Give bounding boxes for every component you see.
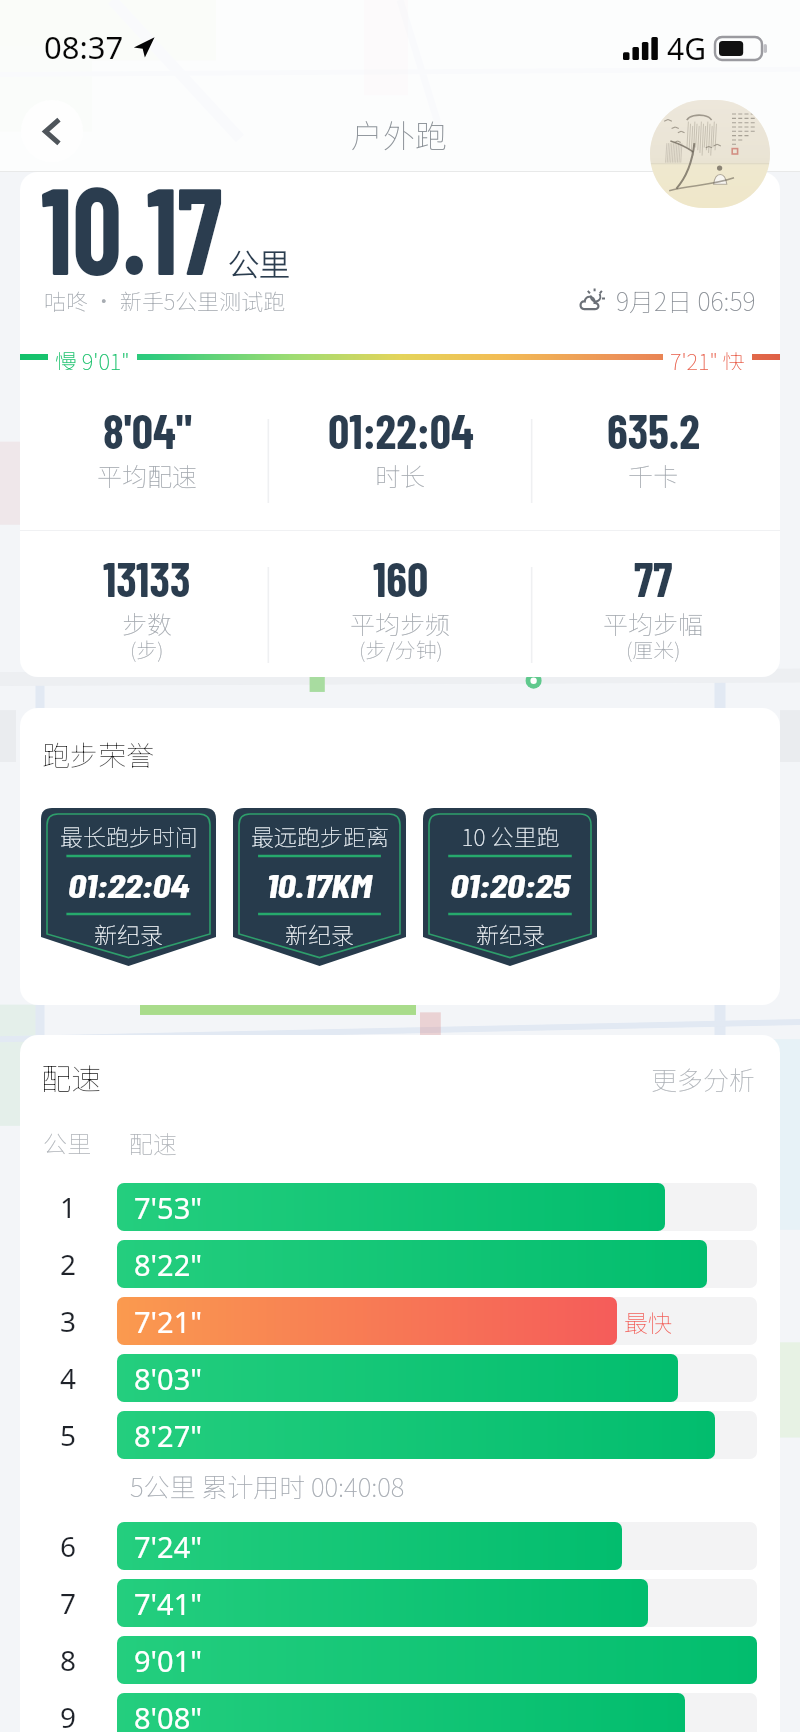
staticText: 新纪录 [94, 917, 163, 950]
staticText: 9 [60, 1698, 77, 1732]
button[interactable]: 13133 [20, 563, 274, 675]
staticText: 4 [60, 1359, 77, 1397]
staticText: 7'41" [134, 1584, 203, 1623]
staticText: 跑步荣誉 [42, 734, 155, 775]
button[interactable]: 01:22:04 [274, 415, 527, 515]
staticText: 160 [373, 550, 429, 606]
staticText: 平均步幅 [603, 605, 704, 641]
staticText: 户外跑 [351, 111, 448, 157]
staticText: 配速 [129, 1125, 177, 1160]
staticText: 01:22:04 [328, 402, 474, 458]
staticText: 635.2 [607, 402, 700, 458]
staticText: 7'21" [134, 1302, 203, 1341]
button[interactable]: 最远跑步距离 [233, 808, 406, 966]
staticText: 新纪录 [285, 917, 354, 950]
button[interactable]: User avatar [650, 100, 770, 208]
staticText: 公里 [228, 240, 290, 285]
staticText: (步) [130, 634, 164, 664]
staticText: 01:22:04 [68, 865, 190, 905]
button[interactable]: 635.2 [527, 415, 780, 515]
staticText: 咕咚 · 新手5公里测试跑 [44, 284, 286, 316]
staticText: 7'53" [134, 1188, 203, 1227]
staticText: 8'03" [134, 1359, 203, 1398]
button[interactable]: 7 [20, 1579, 780, 1627]
staticText: 新纪录 [476, 917, 545, 950]
staticText: 1 [60, 1188, 77, 1226]
staticText: 9'01" [134, 1641, 203, 1680]
staticText: 6 [60, 1527, 77, 1565]
staticText: 最长跑步时间 [60, 819, 198, 852]
staticText: 10.17 [41, 172, 223, 299]
button[interactable]: 10 公里跑 [423, 808, 597, 966]
staticText: 01:20:25 [450, 865, 570, 905]
button[interactable]: 2 [20, 1240, 780, 1288]
staticText: 步数 [122, 605, 173, 641]
button[interactable]: 1 [20, 1183, 780, 1231]
staticText: 时长 [375, 457, 426, 493]
staticText: 77 [634, 550, 673, 606]
staticText: 慢 9'01" [55, 344, 130, 370]
staticText: 最远跑步距离 [251, 819, 389, 852]
staticText: 8'04" [103, 402, 192, 458]
staticText: 9月2日 06:59 [616, 282, 756, 318]
staticText: 7'24" [134, 1527, 203, 1566]
staticText: 8'22" [134, 1245, 203, 1284]
staticText: 配速 [41, 1055, 101, 1098]
staticText: 更多分析 [651, 1060, 756, 1098]
staticText: 平均步频 [350, 605, 451, 641]
staticText: 8'27" [134, 1416, 203, 1455]
staticText: 7'21" 快 [670, 344, 745, 370]
staticText: 平均配速 [97, 457, 198, 493]
button[interactable]: 77 [527, 563, 780, 675]
staticText: 10 公里跑 [461, 819, 560, 852]
staticText: (厘米) [626, 634, 681, 664]
button[interactable]: 3 [20, 1297, 780, 1345]
staticText: 千卡 [628, 457, 679, 493]
button[interactable]: 8'04" [20, 415, 274, 515]
staticText: 10.17KM [266, 865, 372, 905]
staticText: (步/分钟) [359, 634, 443, 664]
button[interactable]: 更多分析 [651, 1060, 756, 1098]
staticText: 13133 [103, 550, 191, 606]
button[interactable]: 配速 [41, 1055, 101, 1098]
staticText: 最快 [624, 1304, 672, 1339]
staticText: 5 [60, 1416, 77, 1454]
staticText: 5公里 累计用时 00:40:08 [130, 1467, 405, 1505]
staticText: 3 [60, 1302, 77, 1340]
button[interactable]: 160 [274, 563, 527, 675]
staticText: 8'08" [134, 1698, 203, 1732]
button[interactable]: 6 [20, 1522, 780, 1570]
button[interactable]: Back [21, 100, 83, 162]
staticText: 4G [667, 28, 706, 69]
staticText: 08:37 [44, 26, 124, 68]
staticText: 2 [60, 1245, 77, 1283]
button[interactable]: 最长跑步时间 [41, 808, 216, 966]
button[interactable]: 9 [20, 1693, 780, 1732]
staticText: 7 [60, 1584, 77, 1622]
staticText: 8 [60, 1641, 77, 1679]
button[interactable]: 8 [20, 1636, 780, 1684]
button[interactable]: 5 [20, 1411, 780, 1459]
button[interactable]: 4 [20, 1354, 780, 1402]
staticText: 公里 [43, 1125, 91, 1160]
